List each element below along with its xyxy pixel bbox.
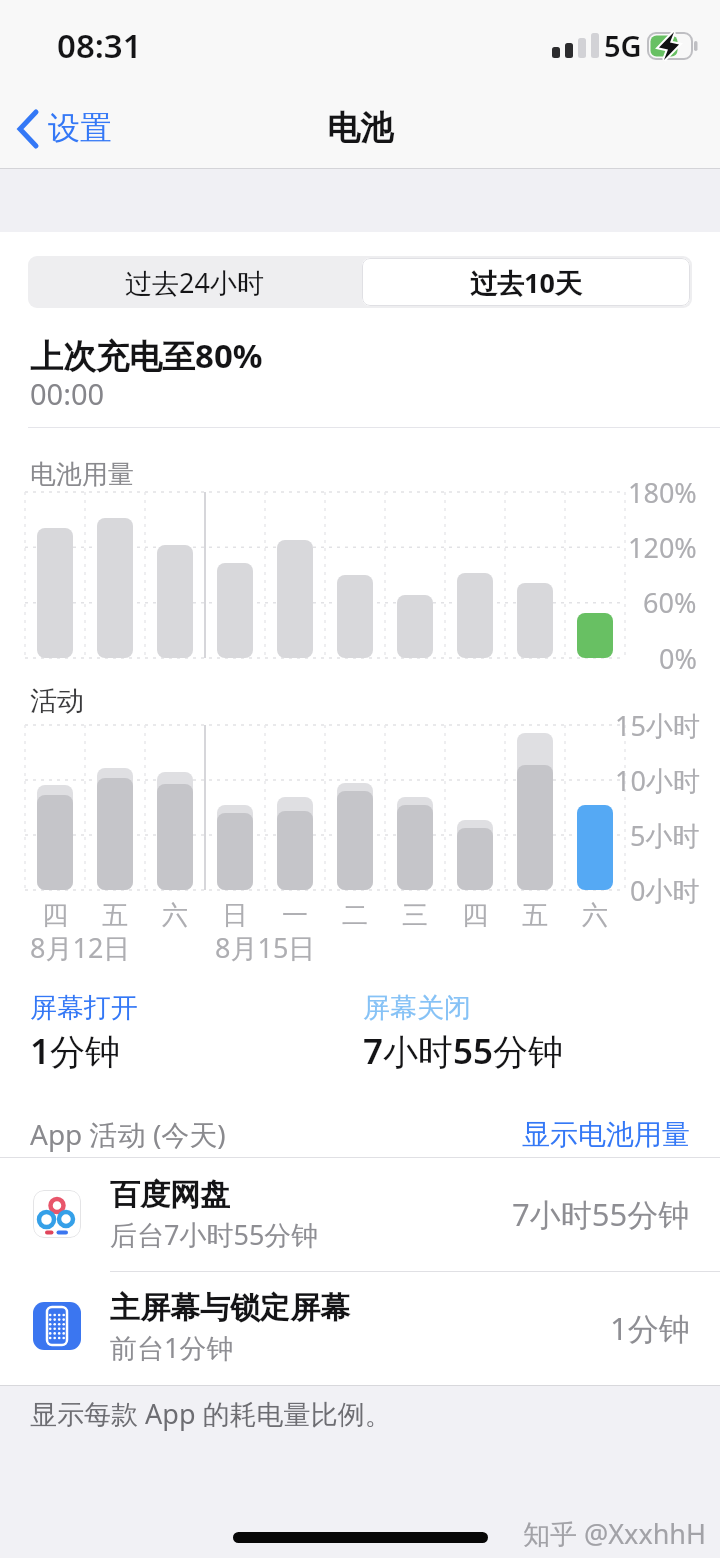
staticText: 四 — [462, 899, 488, 932]
staticText: 8月12日 — [30, 929, 131, 966]
staticText: 一 — [282, 899, 308, 932]
staticText: 120% — [628, 529, 697, 566]
staticText: 显示每款 App 的耗电量比例。 — [30, 1395, 392, 1432]
staticText: 二 — [342, 899, 368, 932]
staticText: 5小时 — [630, 817, 700, 854]
staticText: App 活动 (今天) — [30, 1115, 226, 1153]
staticText: 1分钟 — [30, 1027, 121, 1075]
button[interactable] — [362, 258, 690, 306]
staticText: 5G — [604, 26, 642, 65]
staticText: 主屏幕与锁定屏幕 — [110, 1289, 350, 1327]
staticText: 电池 — [327, 107, 393, 149]
staticText: 日 — [222, 899, 248, 932]
staticText: 上次充电至80% — [30, 333, 263, 378]
staticText: 60% — [643, 584, 697, 621]
staticText: 15小时 — [615, 707, 700, 744]
staticText: 屏幕打开 — [30, 991, 138, 1025]
staticText: 7小时55分钟 — [363, 1027, 564, 1075]
staticText: 00:00 — [30, 374, 105, 413]
button[interactable] — [28, 256, 692, 308]
staticText: 五 — [522, 899, 548, 932]
staticText: 前台1分钟 — [110, 1329, 234, 1366]
staticText: 六 — [582, 899, 608, 932]
staticText: 8月15日 — [215, 929, 316, 966]
staticText: 知乎 @XxxhhH — [523, 1515, 707, 1552]
staticText: 过去24小时 — [125, 264, 264, 301]
staticText: 0% — [659, 640, 697, 677]
staticText: 三 — [402, 899, 428, 932]
button[interactable] — [0, 1158, 720, 1271]
button[interactable] — [10, 100, 140, 156]
staticText: 五 — [102, 899, 128, 932]
staticText: 1分钟 — [610, 1307, 690, 1349]
staticText: 0小时 — [630, 872, 700, 909]
staticText: 百度网盘 — [110, 1176, 230, 1214]
staticText: 过去10天 — [470, 264, 582, 301]
staticText: 7小时55分钟 — [512, 1193, 690, 1235]
staticText: 显示电池用量 — [522, 1117, 690, 1152]
staticText: 四 — [42, 899, 68, 932]
staticText: 屏幕关闭 — [363, 991, 471, 1025]
staticText: 活动 — [30, 684, 84, 718]
staticText: 电池用量 — [30, 458, 134, 491]
staticText: 10小时 — [615, 762, 700, 799]
button[interactable] — [0, 1272, 720, 1385]
staticText: 后台7小时55分钟 — [110, 1216, 319, 1253]
button[interactable] — [490, 1106, 700, 1162]
staticText: 六 — [162, 899, 188, 932]
staticText: 设置 — [48, 108, 112, 148]
staticText: 08:31 — [57, 23, 142, 68]
staticText: 180% — [628, 474, 697, 511]
